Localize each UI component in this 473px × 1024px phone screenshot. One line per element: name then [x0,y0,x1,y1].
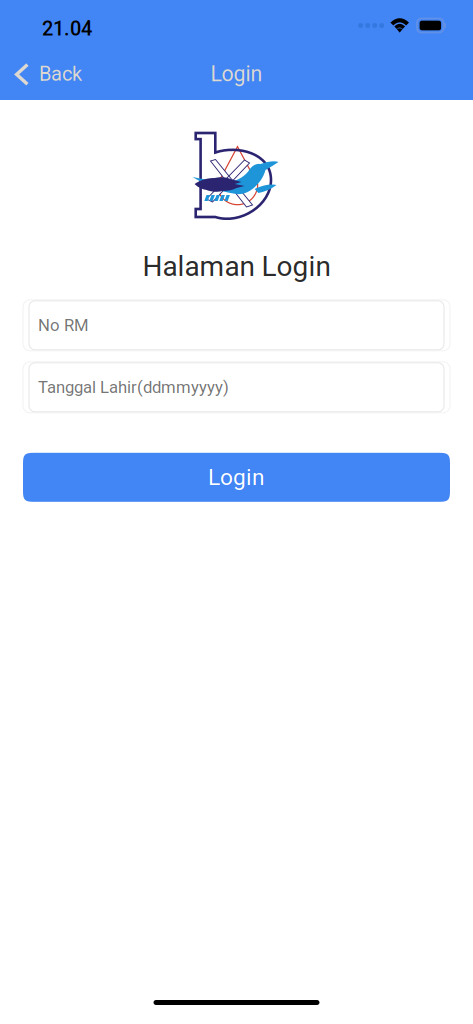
button[interactable]: Back [0,48,94,100]
staticText: 21.04 [42,17,92,40]
staticText: Login [210,61,262,86]
staticText: Back [39,62,82,86]
staticText: No RM [38,315,89,335]
staticText: Login [208,464,265,491]
staticText: Tanggal Lahir(ddmmyyyy) [38,377,229,397]
staticText: Halaman Login [142,250,330,283]
button[interactable]: Login [23,453,450,502]
